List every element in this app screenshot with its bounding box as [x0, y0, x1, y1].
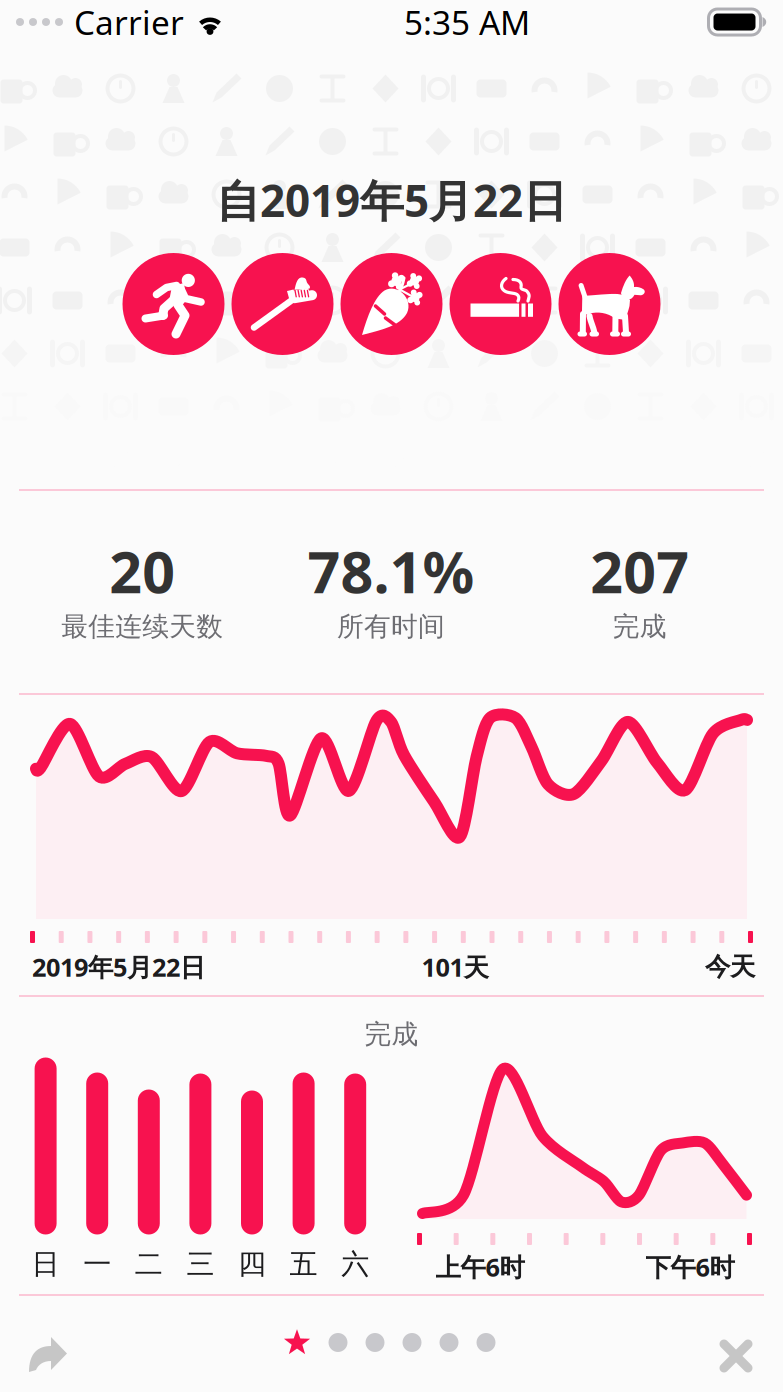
staticText: 日 [32, 1247, 60, 1281]
staticText: 所有时间 [337, 610, 445, 643]
staticText: Carrier [74, 0, 184, 44]
staticText: 20 [109, 533, 175, 609]
staticText: 207 [590, 533, 689, 609]
staticText: 101天 [421, 950, 488, 984]
button[interactable]: Share [14, 1322, 82, 1387]
staticText: 5:35 AM [404, 0, 530, 44]
button[interactable] [340, 253, 442, 355]
staticText: 二 [135, 1247, 163, 1281]
staticText: 四 [238, 1247, 266, 1281]
button[interactable] [231, 253, 333, 355]
staticText: 三 [186, 1247, 214, 1281]
staticText: 上午6时 [435, 1250, 524, 1284]
staticText: 最佳连续天数 [61, 610, 223, 643]
staticText: 下午6时 [645, 1250, 734, 1284]
button[interactable]: Close [705, 1325, 767, 1387]
button[interactable] [449, 253, 551, 355]
staticText: 2019年5月22日 [32, 950, 205, 984]
staticText: 六 [341, 1247, 369, 1281]
staticText: 五 [290, 1247, 318, 1281]
button[interactable] [558, 253, 660, 355]
staticText: 今天 [705, 951, 755, 982]
staticText: 一 [83, 1247, 111, 1281]
staticText: 完成 [613, 610, 667, 643]
staticText: 完成 [364, 1018, 418, 1051]
staticText: 78.1% [307, 533, 474, 609]
staticText: 自2019年5月22日 [216, 171, 567, 229]
button[interactable] [122, 253, 224, 355]
